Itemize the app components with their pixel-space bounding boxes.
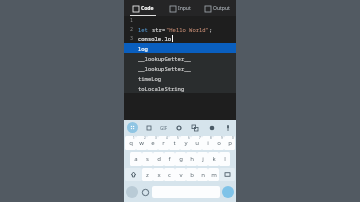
button[interactable]: d <box>153 152 164 166</box>
staticText: 4 <box>166 136 168 140</box>
button[interactable]: w <box>136 136 147 150</box>
staticText: let <box>138 26 152 33</box>
staticText: a <box>134 155 138 163</box>
staticText: 0 <box>232 136 234 140</box>
button[interactable]: o <box>213 136 224 150</box>
button[interactable]: u <box>191 136 202 150</box>
button[interactable]: h <box>186 152 197 166</box>
staticText: v <box>179 171 183 179</box>
staticText: log <box>138 45 148 52</box>
button[interactable]: a <box>130 152 142 166</box>
staticText: str= <box>152 26 166 33</box>
staticText: w <box>139 139 144 147</box>
staticText: __lookupSetter__ <box>138 65 191 72</box>
button[interactable]: i <box>202 136 213 150</box>
button[interactable]: e <box>147 136 158 150</box>
staticText: q <box>129 139 133 147</box>
staticText: GIF <box>160 125 168 131</box>
staticText: n <box>201 171 205 179</box>
button[interactable]: toLocaleString <box>124 83 236 93</box>
staticText: e <box>151 139 155 147</box>
button[interactable]: c <box>164 168 175 181</box>
staticText: 9 <box>221 136 223 140</box>
button[interactable]: Emoji <box>140 187 150 197</box>
staticText: s <box>146 155 149 163</box>
staticText: u <box>195 139 199 147</box>
staticText: __lookupGetter__ <box>138 55 191 62</box>
button[interactable]: s <box>142 152 153 166</box>
button[interactable]: Enter <box>222 186 234 198</box>
button[interactable]: l <box>219 152 230 166</box>
button[interactable]: Keyboard menu <box>127 122 138 133</box>
button[interactable]: __lookupSetter__ <box>124 63 236 73</box>
staticText: i <box>207 139 209 147</box>
button[interactable]: log <box>124 43 236 53</box>
staticText: h <box>190 155 194 163</box>
staticText: Input <box>178 5 191 12</box>
staticText: 6 <box>188 136 190 140</box>
button[interactable]: Code <box>124 0 162 16</box>
button[interactable]: Stickers <box>143 122 154 133</box>
button[interactable]: j <box>197 152 208 166</box>
staticText: 5 <box>177 136 179 140</box>
staticText: ; <box>209 26 213 33</box>
staticText: 7 <box>199 136 201 140</box>
staticText: 3 <box>130 35 134 42</box>
staticText: 1 <box>133 136 135 140</box>
staticText: p <box>228 139 232 147</box>
button[interactable]: x <box>153 168 164 181</box>
button[interactable]: Voice input <box>222 122 233 133</box>
staticText: "Hello World" <box>166 26 209 33</box>
staticText: 2 <box>144 136 146 140</box>
staticText: d <box>157 155 161 163</box>
staticText: t <box>173 139 176 147</box>
staticText: x <box>157 171 161 179</box>
button[interactable]: GIF <box>160 125 168 131</box>
button[interactable]: Output <box>199 0 236 16</box>
staticText: console.lo <box>138 35 172 42</box>
button[interactable]: Backspace <box>219 168 235 181</box>
staticText: 1 <box>130 17 134 24</box>
button[interactable]: z <box>142 168 153 181</box>
staticText: g <box>179 155 183 163</box>
button[interactable]: Theme <box>206 122 217 133</box>
button[interactable]: Translate <box>189 122 200 133</box>
staticText: Code <box>141 5 154 12</box>
button[interactable]: timeLog <box>124 73 236 83</box>
button[interactable]: p <box>224 136 235 150</box>
button[interactable]: m <box>208 168 219 181</box>
staticText: j <box>202 155 204 163</box>
staticText: b <box>190 171 194 179</box>
staticText: 3 <box>155 136 157 140</box>
staticText: toLocaleString <box>138 85 185 92</box>
staticText: m <box>211 171 217 179</box>
button[interactable]: t <box>169 136 180 150</box>
staticText: 8 <box>210 136 212 140</box>
button[interactable]: r <box>158 136 169 150</box>
staticText: o <box>217 139 221 147</box>
button[interactable]: Shift <box>125 168 142 181</box>
button[interactable]: v <box>175 168 186 181</box>
button[interactable]: Input <box>162 0 199 16</box>
staticText: 2 <box>130 26 134 33</box>
staticText: f <box>168 155 171 163</box>
button[interactable]: y <box>180 136 191 150</box>
staticText: y <box>184 139 188 147</box>
button[interactable]: n <box>197 168 208 181</box>
staticText: z <box>146 171 149 179</box>
staticText: r <box>162 139 165 147</box>
button[interactable]: f <box>164 152 175 166</box>
button[interactable]: q <box>125 136 136 150</box>
staticText: k <box>212 155 216 163</box>
button[interactable]: __lookupGetter__ <box>124 53 236 63</box>
button[interactable]: g <box>175 152 186 166</box>
button[interactable]: b <box>186 168 197 181</box>
button[interactable]: Symbols <box>126 186 138 198</box>
staticText: c <box>168 171 171 179</box>
button[interactable]: k <box>208 152 219 166</box>
staticText: l <box>224 155 226 163</box>
button[interactable]: Settings <box>173 122 184 133</box>
staticText: Output <box>213 5 230 12</box>
staticText: timeLog <box>138 75 162 82</box>
